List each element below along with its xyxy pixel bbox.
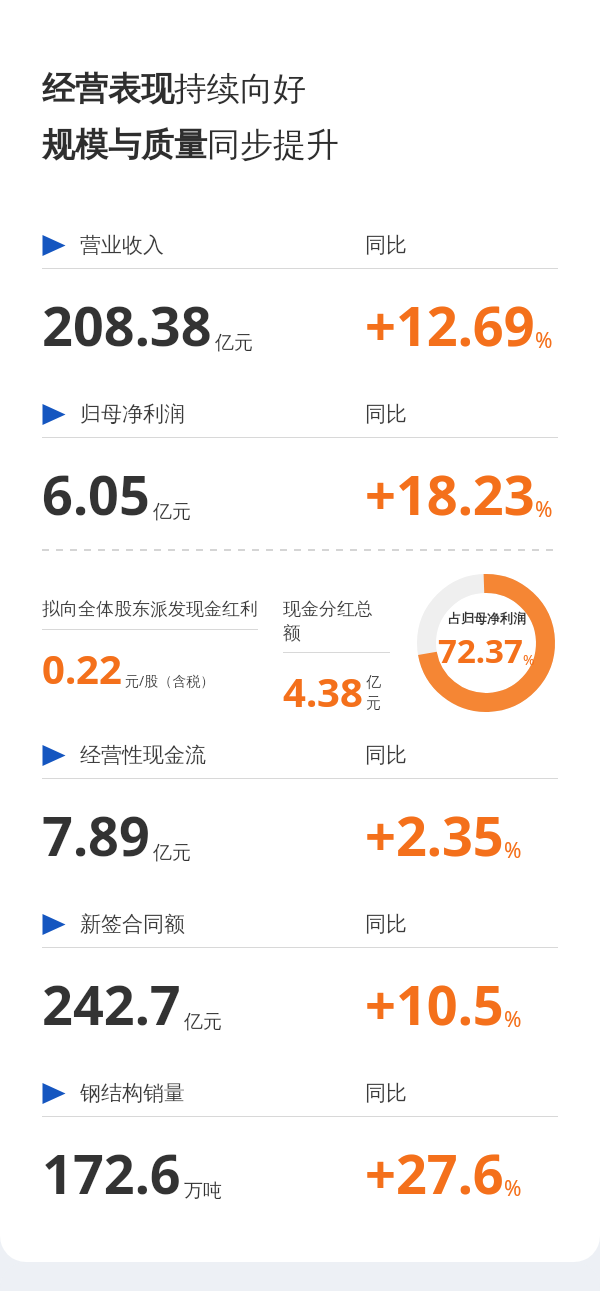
staticText: 242.7 <box>42 967 181 1041</box>
staticText: % <box>535 326 553 355</box>
staticText: 钢结构销量 <box>80 1080 185 1106</box>
staticText: % <box>504 1005 522 1034</box>
staticText: % <box>504 1174 522 1203</box>
staticText: +12.69 <box>365 288 535 362</box>
staticText: 亿元 <box>153 841 191 865</box>
staticText: 同比 <box>365 1080 407 1106</box>
staticText: 208.38 <box>42 288 212 362</box>
staticText: % <box>523 650 535 669</box>
staticText: 同比 <box>365 232 407 258</box>
staticText: 经营性现金流 <box>80 742 206 768</box>
staticText: 规模与质量 <box>42 124 207 166</box>
staticText: 同比 <box>365 401 407 427</box>
staticText: 经营表现 <box>42 68 174 110</box>
staticText: 4.38 <box>283 664 363 718</box>
staticText: 72.37 <box>438 628 523 673</box>
staticText: 亿元 <box>366 673 390 713</box>
button[interactable]: 钢结构销量 <box>0 1078 600 1247</box>
button[interactable]: 营业收入 <box>0 230 600 399</box>
staticText: 持续向好 <box>174 68 306 110</box>
staticText: 同比 <box>365 742 407 768</box>
button[interactable]: 占归母净利润 72.37% <box>417 574 555 712</box>
staticText: +18.23 <box>365 457 535 531</box>
staticText: % <box>535 495 553 524</box>
button[interactable]: 拟向全体股东派发现金红利 <box>42 598 258 695</box>
staticText: 172.6 <box>42 1136 181 1210</box>
staticText: 7.89 <box>42 798 150 872</box>
staticText: 万吨 <box>184 1179 222 1203</box>
staticText: 营业收入 <box>80 232 164 258</box>
button[interactable]: 经营性现金流 <box>0 740 600 909</box>
staticText: 亿元 <box>184 1010 222 1034</box>
staticText: 亿元 <box>153 500 191 524</box>
staticText: 现金分红总额 <box>283 598 390 644</box>
staticText: 拟向全体股东派发现金红利 <box>42 598 258 621</box>
staticText: 同步提升 <box>207 124 339 166</box>
staticText: 归母净利润 <box>80 401 185 427</box>
staticText: 亿元 <box>215 331 253 355</box>
staticText: +2.35 <box>365 798 504 872</box>
staticText: 新签合同额 <box>80 911 185 937</box>
staticText: +10.5 <box>365 967 504 1041</box>
button[interactable]: 现金分红总额 <box>283 598 390 718</box>
staticText: 元/股（含税） <box>125 671 215 690</box>
button[interactable]: 新签合同额 <box>0 909 600 1078</box>
staticText: 同比 <box>365 911 407 937</box>
staticText: +27.6 <box>365 1136 504 1210</box>
staticText: % <box>504 836 522 865</box>
staticText: 占归母净利润 <box>448 610 526 626</box>
button[interactable]: 归母净利润 <box>0 399 600 568</box>
staticText: 6.05 <box>42 457 150 531</box>
staticText: 0.22 <box>42 641 122 695</box>
